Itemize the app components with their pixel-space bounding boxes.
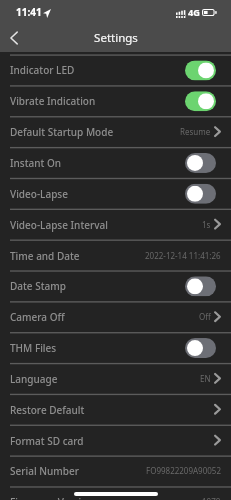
staticText: Off bbox=[199, 311, 211, 322]
button[interactable]: Toggle bbox=[185, 60, 216, 80]
staticText: Restore Default bbox=[10, 403, 85, 417]
staticText: EN bbox=[200, 373, 211, 384]
staticText: Time and Date bbox=[10, 248, 80, 262]
button[interactable]: Indicator LED bbox=[0, 54, 231, 85]
button[interactable]: Toggle bbox=[185, 276, 216, 296]
staticText: Indicator LED bbox=[10, 63, 75, 77]
staticText: 4G bbox=[188, 6, 200, 19]
button[interactable]: Instant On bbox=[0, 147, 231, 178]
staticText: Format SD card bbox=[10, 434, 84, 448]
staticText: Firmware Version bbox=[10, 495, 94, 500]
button[interactable]: Vibrate Indication bbox=[0, 85, 231, 116]
button[interactable]: THM Files bbox=[0, 332, 231, 363]
button[interactable]: Back bbox=[0, 24, 28, 52]
staticText: Instant On bbox=[10, 156, 62, 170]
staticText: Video-Lapse Interval bbox=[10, 218, 108, 232]
staticText: Settings bbox=[94, 30, 138, 46]
staticText: Language bbox=[10, 372, 58, 386]
button[interactable]: Toggle bbox=[185, 91, 216, 111]
staticText: 1078 bbox=[202, 496, 221, 500]
button[interactable]: Time and Date bbox=[0, 239, 231, 270]
button[interactable]: Serial Number bbox=[0, 455, 231, 486]
staticText: Date Stamp bbox=[10, 279, 66, 293]
button[interactable]: Toggle bbox=[185, 153, 216, 173]
staticText: Camera Off bbox=[10, 310, 65, 324]
staticText: Vibrate Indication bbox=[10, 94, 96, 108]
button[interactable]: Firmware Version bbox=[0, 486, 231, 500]
button[interactable]: Toggle bbox=[185, 338, 216, 358]
staticText: Default Startup Mode bbox=[10, 125, 114, 139]
button[interactable]: Video-Lapse Interval bbox=[0, 209, 231, 240]
staticText: Video-Lapse bbox=[10, 187, 68, 201]
button[interactable]: Toggle bbox=[185, 184, 216, 204]
staticText: THM Files bbox=[10, 341, 57, 355]
button[interactable]: Video-Lapse bbox=[0, 178, 231, 209]
button[interactable]: Format SD card bbox=[0, 425, 231, 456]
button[interactable]: Default Startup Mode bbox=[0, 116, 231, 147]
staticText: FO99822209A90052 bbox=[146, 465, 221, 476]
staticText: Serial Number bbox=[10, 464, 79, 478]
staticText: 2022-12-14 11:41:26 bbox=[145, 249, 221, 260]
button[interactable]: Date Stamp bbox=[0, 270, 231, 301]
staticText: 11:41 bbox=[16, 5, 42, 19]
button[interactable]: Camera Off bbox=[0, 301, 231, 332]
button[interactable]: Restore Default bbox=[0, 394, 231, 425]
button[interactable]: Language bbox=[0, 363, 231, 394]
staticText: 1s bbox=[202, 219, 211, 230]
staticText: Resume bbox=[180, 126, 211, 137]
